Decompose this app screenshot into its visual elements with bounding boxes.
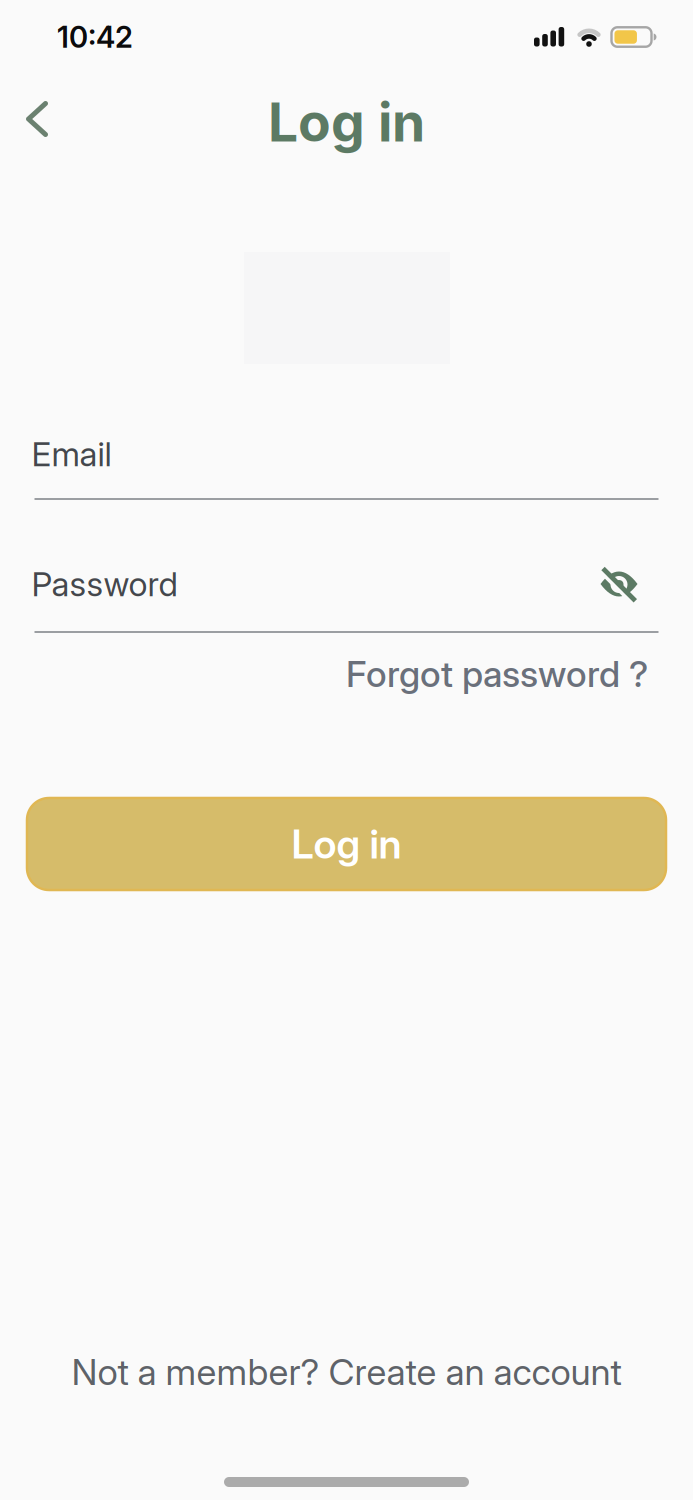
staticText: Not a member? Create an account xyxy=(71,1350,621,1394)
staticText: Log in xyxy=(268,90,425,154)
staticText: Password xyxy=(31,564,177,604)
staticText: Log in xyxy=(291,820,401,868)
staticText: Email xyxy=(31,434,111,474)
staticText: Forgot password ? xyxy=(346,652,648,696)
button[interactable]: Log in xyxy=(27,798,666,890)
button[interactable]: Back xyxy=(9,91,65,147)
staticText: 10:42 xyxy=(57,19,133,55)
button[interactable]: Show password xyxy=(591,558,647,610)
button[interactable]: Not a member? Create an account xyxy=(71,1350,621,1394)
button[interactable]: Forgot password ? xyxy=(346,652,648,696)
